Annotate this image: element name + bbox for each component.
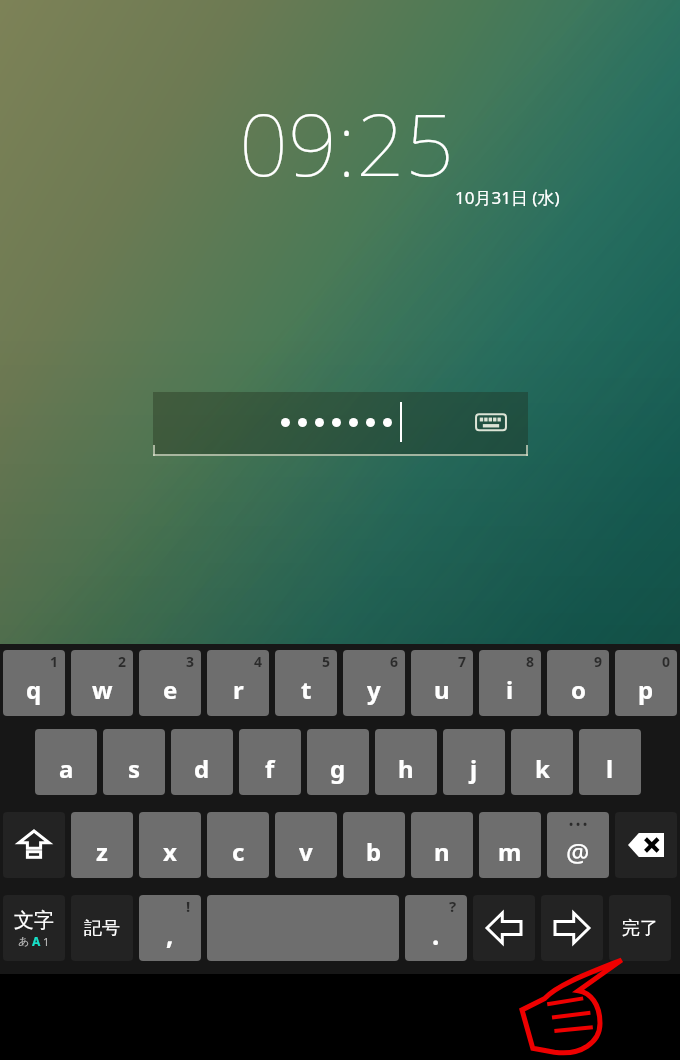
staticText: u	[434, 673, 450, 706]
staticText: h	[398, 752, 414, 785]
button[interactable]: n	[411, 812, 473, 878]
button[interactable]: v	[275, 812, 337, 878]
staticText: 6	[390, 652, 399, 671]
staticText: k	[535, 752, 550, 785]
staticText: c	[232, 835, 245, 868]
button[interactable]: k	[511, 729, 573, 795]
button[interactable]: 0	[615, 650, 677, 716]
staticText: 10月31日 (水)	[455, 186, 560, 209]
staticText: t	[301, 673, 312, 706]
staticText: f	[265, 752, 275, 785]
staticText: r	[233, 673, 244, 706]
staticText: 9	[594, 652, 603, 671]
staticText: q	[26, 673, 42, 706]
staticText: 1	[43, 934, 50, 949]
button[interactable]: 完了	[609, 895, 671, 961]
staticText: w	[92, 673, 113, 706]
staticText: A	[32, 933, 41, 949]
staticText: y	[367, 673, 381, 706]
staticText: j	[470, 752, 478, 785]
staticText: 7	[458, 652, 467, 671]
button[interactable]: 6	[343, 650, 405, 716]
button[interactable]: b	[343, 812, 405, 878]
staticText: 2	[118, 652, 127, 671]
button[interactable]: Switch input method	[153, 392, 528, 456]
staticText: s	[128, 752, 141, 785]
button[interactable]: Shift	[3, 812, 65, 878]
staticText: o	[571, 673, 586, 706]
button[interactable]: 5	[275, 650, 337, 716]
staticText: d	[194, 752, 210, 785]
button[interactable]: !	[139, 895, 201, 961]
button[interactable]: c	[207, 812, 269, 878]
button[interactable]: x	[139, 812, 201, 878]
button[interactable]: a	[35, 729, 97, 795]
staticText: .	[432, 917, 440, 952]
staticText: g	[330, 752, 346, 785]
staticText: 5	[322, 652, 331, 671]
staticText: ,	[166, 917, 174, 952]
staticText: a	[59, 752, 74, 785]
button[interactable]: 記号	[71, 895, 133, 961]
button[interactable]: 2	[71, 650, 133, 716]
button[interactable]: m	[479, 812, 541, 878]
button[interactable]: ?	[405, 895, 467, 961]
button[interactable]: j	[443, 729, 505, 795]
staticText: 3	[186, 652, 195, 671]
button[interactable]: h	[375, 729, 437, 795]
button[interactable]: 7	[411, 650, 473, 716]
staticText: !	[186, 896, 191, 916]
button[interactable]: 9	[547, 650, 609, 716]
staticText: e	[163, 673, 178, 706]
button[interactable]: 3	[139, 650, 201, 716]
button[interactable]: 文字	[3, 895, 65, 961]
button[interactable]: 4	[207, 650, 269, 716]
staticText: b	[366, 835, 382, 868]
staticText: あ	[18, 934, 30, 948]
button[interactable]: z	[71, 812, 133, 878]
staticText: • • •	[569, 816, 588, 831]
button[interactable]: 1	[3, 650, 65, 716]
staticText: ?	[449, 896, 457, 916]
staticText: 8	[526, 652, 535, 671]
button[interactable]: Move cursor right	[541, 895, 603, 961]
staticText: m	[498, 835, 522, 868]
staticText: 4	[254, 652, 263, 671]
staticText: 記号	[84, 917, 120, 940]
staticText: z	[96, 835, 108, 868]
button[interactable]: f	[239, 729, 301, 795]
staticText: @	[566, 834, 590, 869]
button[interactable]: d	[171, 729, 233, 795]
button[interactable]: l	[579, 729, 641, 795]
button[interactable]: g	[307, 729, 369, 795]
staticText: n	[434, 835, 450, 868]
staticText: 完了	[622, 917, 658, 940]
staticText: x	[163, 835, 177, 868]
staticText: p	[638, 673, 654, 706]
staticText: 1	[50, 652, 59, 671]
button[interactable]: Move cursor left	[473, 895, 535, 961]
staticText: i	[506, 673, 514, 706]
staticText: 09:25	[239, 84, 454, 201]
button[interactable]: 8	[479, 650, 541, 716]
button[interactable]: Switch input method	[474, 409, 508, 435]
staticText: v	[299, 835, 313, 868]
button[interactable]: • • •	[547, 812, 609, 878]
staticText: 0	[662, 652, 671, 671]
staticText: 文字	[14, 908, 54, 933]
button[interactable]: Backspace	[615, 812, 677, 878]
button[interactable]: s	[103, 729, 165, 795]
staticText: l	[606, 752, 614, 785]
